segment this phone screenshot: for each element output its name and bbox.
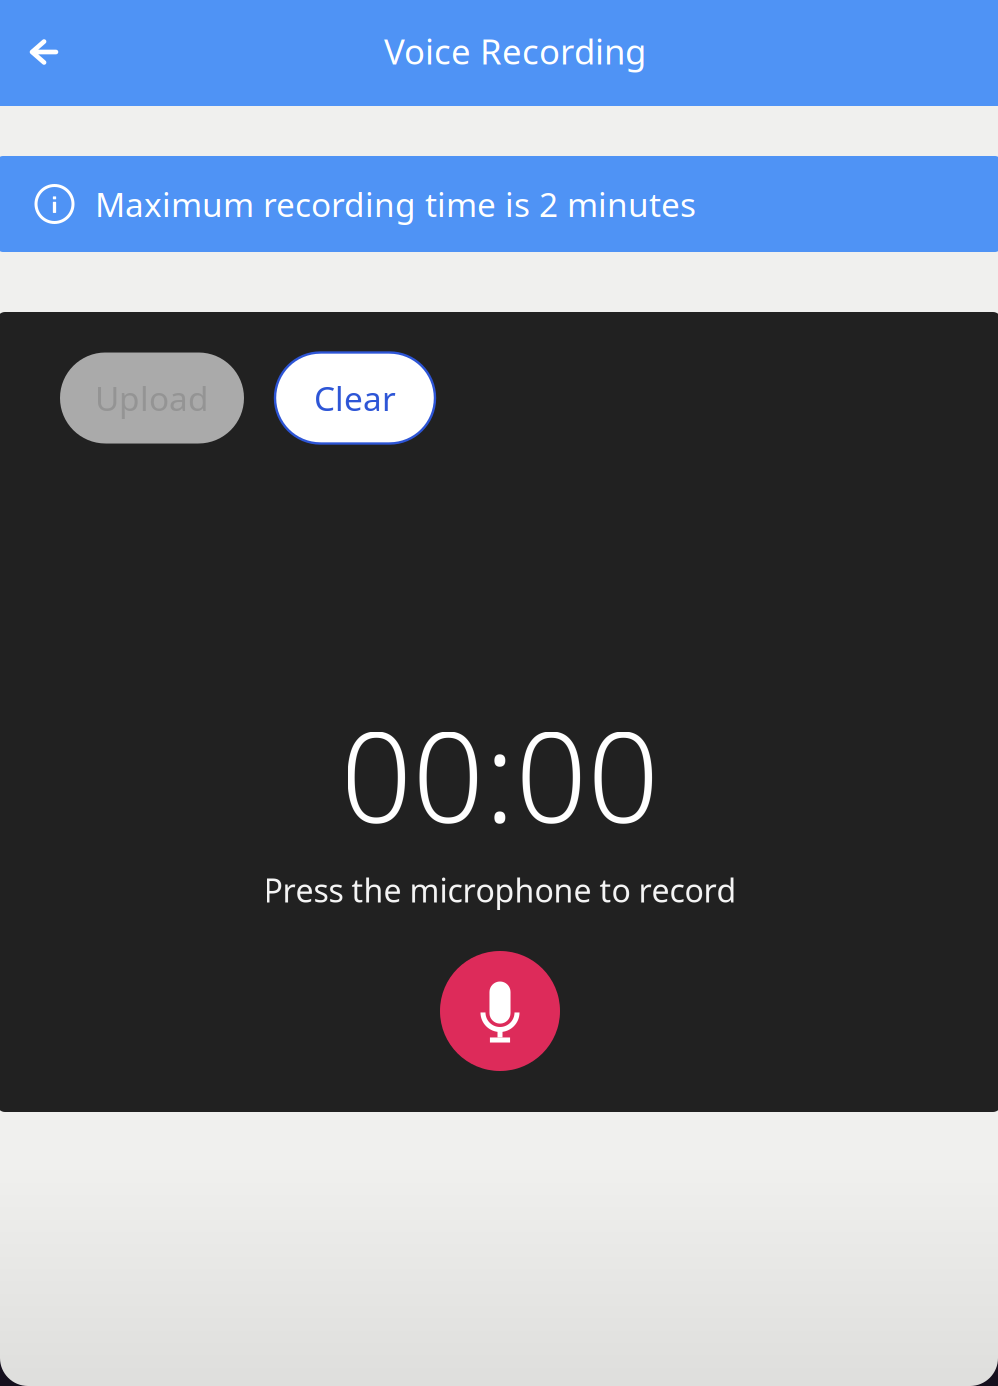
button[interactable]: Back	[0, 0, 89, 105]
button[interactable]: Clear	[275, 352, 435, 443]
button[interactable]: Upload	[60, 352, 244, 443]
staticText: Voice Recording	[384, 28, 646, 74]
button[interactable]: Record	[440, 951, 560, 1071]
staticText: Upload	[95, 376, 209, 420]
staticText: Maximum recording time is 2 minutes	[95, 182, 696, 226]
staticText: Press the microphone to record	[263, 869, 736, 911]
staticText: Clear	[314, 376, 396, 420]
staticText: 00:00	[340, 691, 659, 857]
